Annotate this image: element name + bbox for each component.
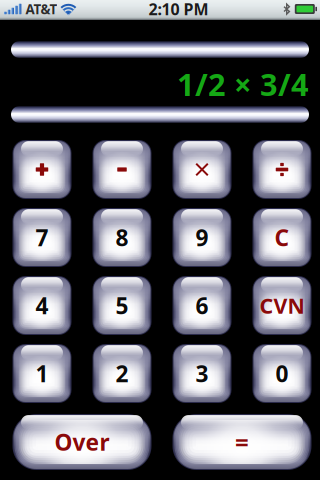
staticText: 8: [115, 222, 128, 252]
button[interactable]: 9: [172, 208, 231, 267]
button[interactable]: 6: [172, 276, 231, 335]
staticText: 1/2 × 3/4: [177, 64, 309, 104]
staticText: 2:10 PM: [149, 0, 209, 20]
button[interactable]: CVN: [252, 276, 311, 335]
button[interactable]: Multiply: [172, 140, 231, 199]
staticText: AT&T: [25, 0, 57, 18]
staticText: 3: [195, 358, 208, 388]
button[interactable]: Divide: [252, 140, 311, 199]
button[interactable]: C: [252, 208, 311, 267]
staticText: 6: [195, 290, 208, 320]
button[interactable]: 0: [252, 344, 311, 403]
button[interactable]: 4: [12, 276, 71, 335]
button[interactable]: =: [172, 414, 311, 470]
staticText: Over: [54, 427, 109, 457]
staticText: 1: [35, 358, 48, 388]
button[interactable]: 1: [12, 344, 71, 403]
button[interactable]: 2: [92, 344, 151, 403]
button[interactable]: Over: [12, 414, 151, 470]
button[interactable]: Add: [12, 140, 71, 199]
button[interactable]: 8: [92, 208, 151, 267]
staticText: =: [235, 426, 249, 458]
staticText: 9: [195, 222, 208, 252]
staticText: 5: [115, 290, 128, 320]
button[interactable]: 5: [92, 276, 151, 335]
staticText: C: [274, 222, 289, 252]
button[interactable]: Subtract: [92, 140, 151, 199]
staticText: 0: [275, 358, 288, 388]
button[interactable]: 7: [12, 208, 71, 267]
button[interactable]: 3: [172, 344, 231, 403]
staticText: 2: [115, 358, 128, 388]
staticText: 4: [35, 290, 48, 320]
staticText: CVN: [259, 291, 304, 320]
staticText: 7: [35, 222, 48, 252]
